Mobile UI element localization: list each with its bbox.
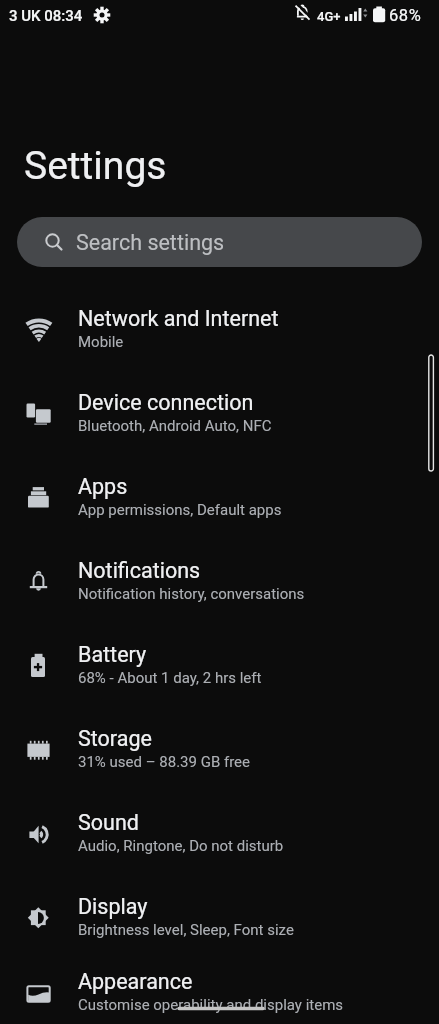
button[interactable]: Apps xyxy=(0,454,439,538)
staticText: Settings xyxy=(24,143,167,189)
staticText: 68% xyxy=(389,6,422,25)
staticText: 3 UK 08:34 xyxy=(9,7,83,25)
staticText: Battery xyxy=(78,642,147,667)
staticText: 31% used – 88.39 GB free xyxy=(78,753,251,771)
button[interactable]: Battery xyxy=(0,622,439,706)
button[interactable]: Sound xyxy=(0,790,439,874)
staticText: Mobile xyxy=(78,333,124,351)
staticText: Network and Internet xyxy=(78,306,279,331)
staticText: Notifications xyxy=(78,558,201,583)
staticText: Brightness level, Sleep, Font size xyxy=(78,921,294,939)
button[interactable]: Device connection xyxy=(0,370,439,454)
button[interactable]: Appearance xyxy=(0,958,439,1024)
staticText: Search settings xyxy=(76,230,225,255)
staticText: Device connection xyxy=(78,390,254,415)
staticText: Storage xyxy=(78,726,152,751)
button[interactable]: Display xyxy=(0,874,439,958)
staticText: Audio, Ringtone, Do not disturb xyxy=(78,837,284,855)
staticText: Apps xyxy=(78,474,128,499)
staticText: Bluetooth, Android Auto, NFC xyxy=(78,417,272,435)
button[interactable]: Storage xyxy=(0,706,439,790)
staticText: Notification history, conversations xyxy=(78,585,305,603)
staticText: Customise operability and display items xyxy=(78,996,344,1014)
staticText: 4G+ xyxy=(317,9,341,24)
staticText: App permissions, Default apps xyxy=(78,501,282,519)
staticText: Appearance xyxy=(78,969,193,994)
staticText: Display xyxy=(78,894,148,919)
button[interactable]: Notifications xyxy=(0,538,439,622)
staticText: 68% - About 1 day, 2 hrs left xyxy=(78,669,262,687)
button[interactable]: Search settings xyxy=(17,217,422,267)
staticText: Sound xyxy=(78,810,139,835)
button[interactable]: Network and Internet xyxy=(0,286,439,370)
